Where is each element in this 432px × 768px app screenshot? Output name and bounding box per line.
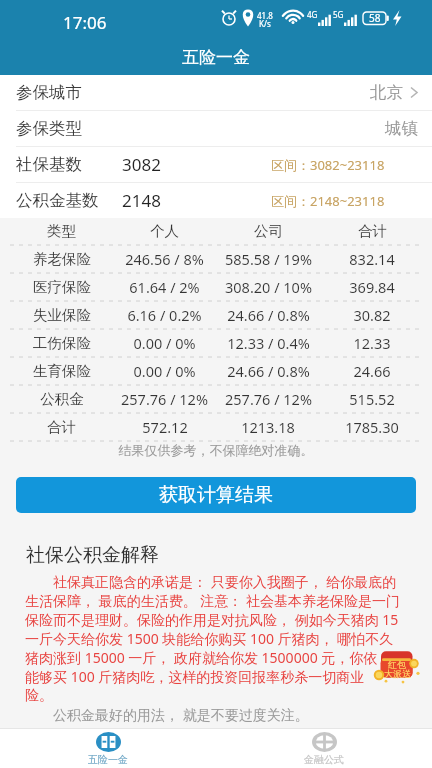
staticText: 246.56 / 8% — [125, 249, 204, 269]
staticText: 五险一金 — [182, 47, 250, 68]
button[interactable]: 社保基数 — [0, 147, 432, 182]
staticText: 结果仅供参考，不保障绝对准确。 — [0, 442, 432, 458]
button[interactable]: 获取计算结果 — [16, 477, 416, 513]
staticText: 生育保险 — [33, 362, 91, 380]
staticText: 五险一金 — [88, 753, 128, 766]
staticText: 4G — [307, 9, 318, 20]
staticText: 5G — [333, 9, 344, 20]
button[interactable]: 红包大派送 — [372, 646, 422, 690]
staticText: 能够买 100 斤猪肉吃，这样的投资回报率秒杀一切商业 — [25, 667, 365, 686]
staticText: 1213.18 — [241, 417, 295, 437]
staticText: 区间：2148~23118 — [271, 192, 385, 210]
staticText: 保险而不是理财。保险的作用是对抗风险， 例如今天猪肉 15 — [25, 610, 399, 629]
staticText: 养老保险 — [33, 250, 91, 268]
staticText: 369.84 — [349, 277, 395, 297]
staticText: 2148 — [122, 189, 161, 212]
staticText: 一斤今天给你发 1500 块能给你购买 100 斤猪肉， 哪怕不久 — [25, 629, 394, 648]
staticText: 公积金最好的用法， 就是不要过度关注。 — [25, 705, 309, 724]
staticText: 12.33 / 0.4% — [227, 333, 310, 353]
staticText: 医疗保险 — [33, 278, 91, 296]
button[interactable]: 金融公式 — [216, 729, 432, 768]
staticText: 参保类型 — [16, 118, 82, 139]
staticText: 58 — [369, 11, 381, 25]
button[interactable]: 参保城市 — [0, 75, 432, 110]
staticText: 获取计算结果 — [159, 483, 273, 507]
staticText: 30.82 — [353, 305, 391, 325]
staticText: 585.58 / 19% — [225, 249, 312, 269]
staticText: 公司 — [254, 222, 283, 240]
staticText: 社保真正隐含的承诺是： 只要你入我圈子， 给你最底的 — [25, 572, 397, 591]
staticText: 41.8 — [257, 10, 273, 21]
staticText: 北京 — [370, 82, 403, 103]
staticText: 金融公式 — [304, 753, 344, 766]
staticText: 12.33 — [353, 333, 391, 353]
staticText: 24.66 — [353, 361, 391, 381]
staticText: 1785.30 — [345, 417, 399, 437]
staticText: 生活保障， 最底的生活费。 注意： 社会基本养老保险是一门 — [25, 591, 400, 610]
staticText: 6.16 / 0.2% — [127, 305, 202, 325]
staticText: 515.52 — [349, 389, 395, 409]
staticText: 24.66 / 0.8% — [227, 361, 310, 381]
staticText: 832.14 — [349, 249, 395, 269]
staticText: 工伤保险 — [33, 334, 91, 352]
staticText: 61.64 / 2% — [129, 277, 200, 297]
staticText: 城镇 — [385, 118, 418, 139]
staticText: 合计 — [47, 418, 76, 436]
button[interactable]: 五险一金 — [0, 729, 216, 768]
staticText: 参保城市 — [16, 82, 82, 103]
staticText: 24.66 / 0.8% — [227, 305, 310, 325]
button[interactable]: 公积金基数 — [0, 183, 432, 218]
staticText: 572.12 — [142, 417, 188, 437]
staticText: 257.76 / 12% — [225, 389, 312, 409]
staticText: 类型 — [47, 222, 76, 240]
staticText: 失业保险 — [33, 306, 91, 324]
button[interactable]: 参保类型 — [0, 111, 432, 146]
staticText: 0.00 / 0% — [133, 333, 196, 353]
staticText: 社保公积金解释 — [26, 543, 159, 567]
staticText: 猪肉涨到 15000 一斤， 政府就给你发 1500000 元，你依 — [25, 648, 378, 667]
staticText: 区间：3082~23118 — [271, 156, 385, 174]
staticText: 公积金 — [40, 390, 84, 408]
staticText: 17:06 — [63, 11, 107, 34]
staticText: 257.76 / 12% — [121, 389, 208, 409]
staticText: 公积金基数 — [16, 190, 99, 211]
staticText: K/s — [259, 18, 271, 29]
staticText: 社保基数 — [16, 154, 82, 175]
staticText: 3082 — [122, 153, 161, 176]
staticText: 308.20 / 10% — [225, 277, 312, 297]
staticText: 合计 — [358, 222, 387, 240]
staticText: 红包 — [388, 659, 406, 670]
staticText: 个人 — [150, 222, 179, 240]
staticText: 大派送 — [384, 668, 411, 679]
staticText: 险。 — [25, 687, 53, 705]
staticText: 0.00 / 0% — [133, 361, 196, 381]
